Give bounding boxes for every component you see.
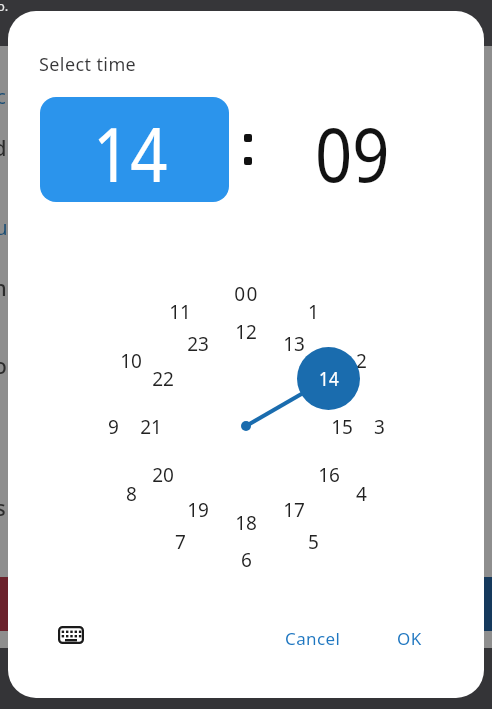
staticText: 7 — [175, 529, 186, 553]
staticText: 14 — [319, 366, 339, 392]
staticText: 15 — [331, 414, 353, 438]
staticText: h — [0, 274, 7, 300]
staticText: 13 — [283, 331, 305, 355]
staticText: o. — [0, 0, 9, 15]
button[interactable]: 14 — [40, 97, 229, 202]
staticText: 16 — [318, 462, 340, 486]
staticText: 20 — [152, 462, 174, 486]
staticText: 09 — [315, 103, 390, 202]
staticText: 18 — [235, 510, 257, 534]
staticText: 5 — [308, 529, 319, 553]
staticText: Cancel — [285, 627, 341, 650]
staticText: OK — [397, 627, 422, 650]
button[interactable]: Cancel — [266, 623, 360, 653]
staticText: 10 — [120, 348, 142, 372]
staticText: 17 — [283, 497, 305, 521]
staticText: 9 — [108, 414, 119, 438]
staticText: 11 — [169, 299, 191, 323]
staticText: 3 — [374, 414, 385, 438]
staticText: 8 — [126, 481, 137, 505]
staticText: 2 — [356, 348, 367, 372]
staticText: 23 — [187, 331, 209, 355]
staticText: o — [0, 352, 7, 378]
button[interactable] — [58, 626, 84, 644]
staticText: u — [0, 214, 8, 240]
staticText: s — [0, 494, 6, 520]
staticText: 00 — [234, 281, 259, 305]
staticText: 21 — [140, 414, 162, 438]
staticText: 6 — [241, 547, 252, 571]
staticText: 12 — [235, 319, 257, 343]
staticText: Select time — [39, 52, 137, 77]
button[interactable]: 09 — [258, 97, 447, 202]
staticText: 19 — [187, 497, 209, 521]
staticText: 14 — [93, 103, 168, 202]
staticText: 1 — [308, 299, 319, 323]
staticText: d — [0, 134, 7, 160]
staticText: 22 — [152, 366, 174, 390]
staticText: 4 — [356, 481, 367, 505]
button[interactable]: 14 — [297, 347, 360, 410]
button[interactable]: OK — [379, 623, 439, 653]
staticText: c — [0, 83, 6, 109]
